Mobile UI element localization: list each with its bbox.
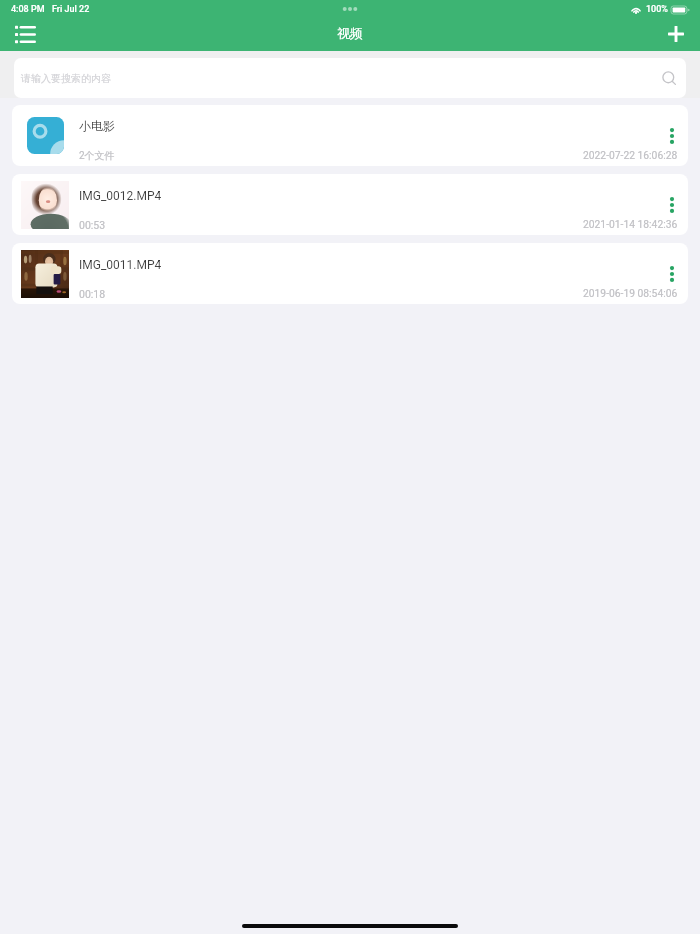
button[interactable]: Add bbox=[654, 20, 700, 51]
button[interactable]: IMG_0011.MP4 bbox=[12, 243, 688, 304]
staticText: 2022-07-22 16:06:28 bbox=[583, 149, 678, 161]
staticText: 2019-06-19 08:54:06 bbox=[583, 287, 678, 299]
staticText: 00:18 bbox=[79, 288, 106, 300]
staticText: 100% bbox=[646, 4, 668, 15]
button[interactable]: More options bbox=[659, 121, 684, 151]
staticText: 2个文件 bbox=[79, 149, 115, 162]
button[interactable]: 请输入要搜索的内容 bbox=[14, 58, 686, 98]
button[interactable]: More options bbox=[659, 190, 684, 220]
button[interactable]: IMG_0012.MP4 bbox=[12, 174, 688, 235]
staticText: Fri Jul 22 bbox=[52, 4, 90, 15]
staticText: 视频 bbox=[337, 25, 363, 41]
button[interactable]: More options bbox=[659, 259, 684, 289]
staticText: 2021-01-14 18:42:36 bbox=[583, 218, 678, 230]
button[interactable]: 小电影 bbox=[12, 105, 688, 166]
staticText: 请输入要搜索的内容 bbox=[21, 72, 111, 85]
button[interactable]: Menu bbox=[0, 20, 46, 51]
staticText: 4:08 PM bbox=[11, 4, 45, 15]
staticText: IMG_0012.MP4 bbox=[79, 189, 162, 203]
staticText: 00:53 bbox=[79, 219, 106, 231]
staticText: 小电影 bbox=[79, 118, 115, 133]
staticText: IMG_0011.MP4 bbox=[79, 258, 162, 272]
